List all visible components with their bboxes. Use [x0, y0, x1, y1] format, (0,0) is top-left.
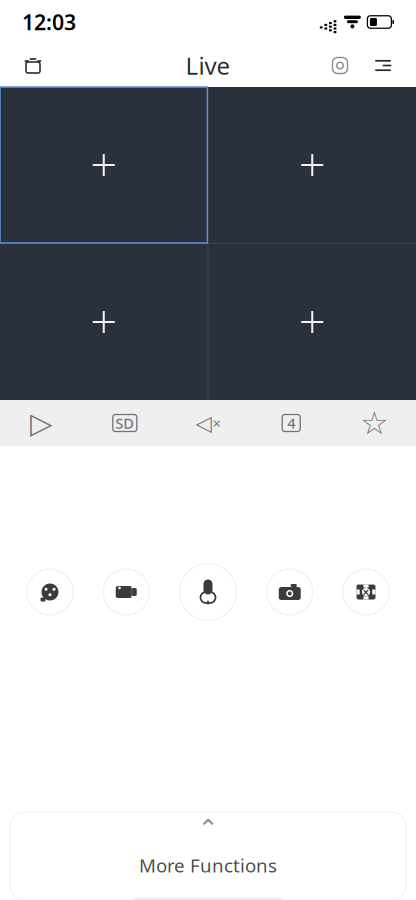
button[interactable]: Channel list: [361, 45, 405, 86]
button[interactable]: Add camera: [0, 244, 207, 400]
staticText: ×: [362, 584, 369, 600]
button[interactable]: Add camera: [0, 87, 207, 243]
button[interactable]: Quality SD: [83, 400, 166, 446]
button[interactable]: Favorite: [333, 400, 416, 446]
staticText: ☆: [360, 405, 389, 441]
button[interactable]: Microphone: [179, 563, 236, 620]
button[interactable]: More Functions: [10, 812, 406, 900]
button[interactable]: Home: [11, 45, 55, 86]
button[interactable]: Layout 4: [250, 400, 333, 446]
button[interactable]: Settings: [319, 45, 361, 86]
staticText: ⌃: [197, 814, 218, 843]
staticText: SD: [115, 413, 134, 433]
staticText: 12:03: [22, 8, 76, 36]
staticText: 4: [287, 413, 295, 433]
button[interactable]: Mute: [166, 400, 250, 446]
button[interactable]: Add camera: [208, 244, 416, 400]
staticText: ◁: [195, 411, 211, 435]
button[interactable]: Record video: [103, 569, 149, 615]
button[interactable]: Snapshot: [267, 569, 313, 615]
button[interactable]: Pan and tilt: [343, 569, 389, 615]
staticText: ×: [212, 413, 220, 433]
staticText: ▷: [30, 406, 53, 440]
button[interactable]: Two-way talk: [27, 569, 73, 615]
button[interactable]: Add camera: [208, 87, 416, 243]
staticText: Live: [185, 50, 230, 81]
button[interactable]: Play: [0, 400, 83, 446]
staticText: More Functions: [139, 853, 277, 878]
